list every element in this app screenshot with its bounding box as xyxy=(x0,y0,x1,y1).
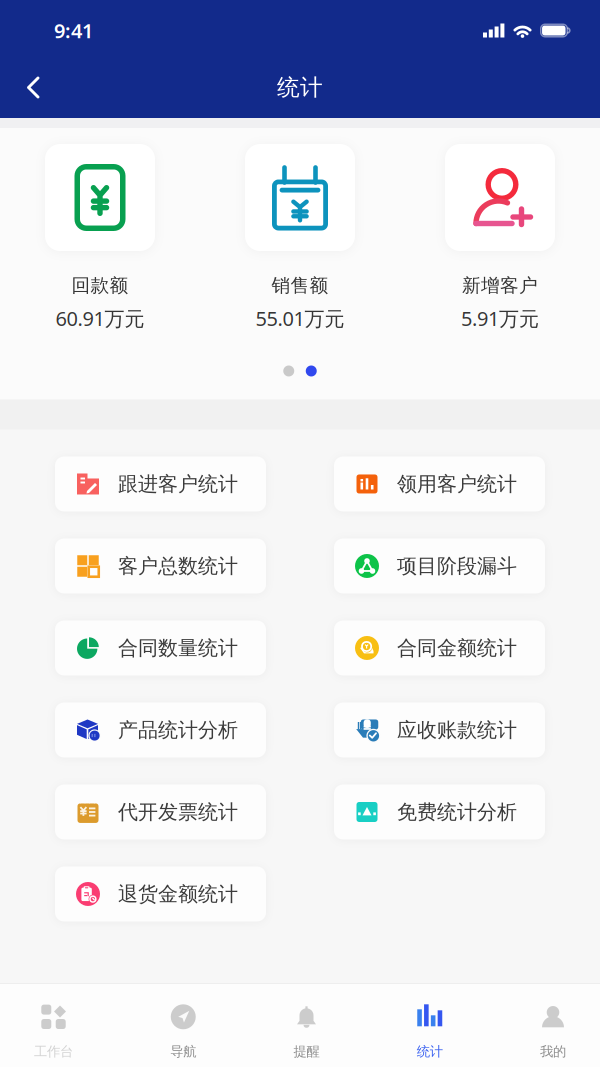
button[interactable]: 客户总数统计 xyxy=(55,538,266,593)
button[interactable]: 合同数量统计 xyxy=(55,620,266,675)
staticText: 销售额 xyxy=(271,274,328,297)
button[interactable]: 工作台 xyxy=(34,984,73,1067)
staticText: 跟进客户统计 xyxy=(118,472,238,496)
staticText: 退货金额统计 xyxy=(118,882,238,906)
staticText: 代开发票统计 xyxy=(118,800,238,824)
staticText: 统计 xyxy=(417,1043,443,1060)
button[interactable]: 领用客户统计 xyxy=(334,456,545,511)
staticText: 55.01万元 xyxy=(255,305,344,331)
staticText: 免费统计分析 xyxy=(397,800,517,824)
button[interactable]: 导航 xyxy=(170,984,196,1067)
staticText: 60.91万元 xyxy=(55,305,144,331)
staticText: 5.91万元 xyxy=(461,305,539,331)
button[interactable]: 提醒 xyxy=(293,984,319,1067)
staticText: 产品统计分析 xyxy=(118,718,238,742)
button[interactable]: 代开发票统计 xyxy=(55,784,266,839)
button[interactable]: 新增客户 xyxy=(400,144,600,331)
staticText: 合同数量统计 xyxy=(118,636,238,660)
button[interactable]: 统计 xyxy=(417,984,443,1067)
staticText: 合同金额统计 xyxy=(397,636,517,660)
staticText: 9:41 xyxy=(54,17,93,44)
staticText: 我的 xyxy=(540,1043,566,1060)
staticText: 领用客户统计 xyxy=(397,472,517,496)
button[interactable]: 应收账款统计 xyxy=(334,702,545,757)
button[interactable]: 合同金额统计 xyxy=(334,620,545,675)
button[interactable]: 回款额 xyxy=(0,144,200,331)
button[interactable]: 免费统计分析 xyxy=(334,784,545,839)
staticText: 提醒 xyxy=(293,1043,319,1060)
button[interactable]: 跟进客户统计 xyxy=(55,456,266,511)
button[interactable]: 我的 xyxy=(540,984,566,1067)
button[interactable]: 产品统计分析 xyxy=(55,702,266,757)
button[interactable]: 退货金额统计 xyxy=(55,866,266,921)
button[interactable]: 项目阶段漏斗 xyxy=(334,538,545,593)
staticText: 新增客户 xyxy=(462,274,538,297)
staticText: 应收账款统计 xyxy=(397,718,517,742)
staticText: 工作台 xyxy=(34,1043,73,1060)
staticText: 项目阶段漏斗 xyxy=(397,554,517,578)
button[interactable]: 返回 xyxy=(10,63,57,111)
staticText: 统计 xyxy=(277,74,323,101)
staticText: 客户总数统计 xyxy=(118,554,238,578)
button[interactable]: 销售额 xyxy=(200,144,400,331)
staticText: 回款额 xyxy=(71,274,128,297)
staticText: 导航 xyxy=(170,1043,196,1060)
